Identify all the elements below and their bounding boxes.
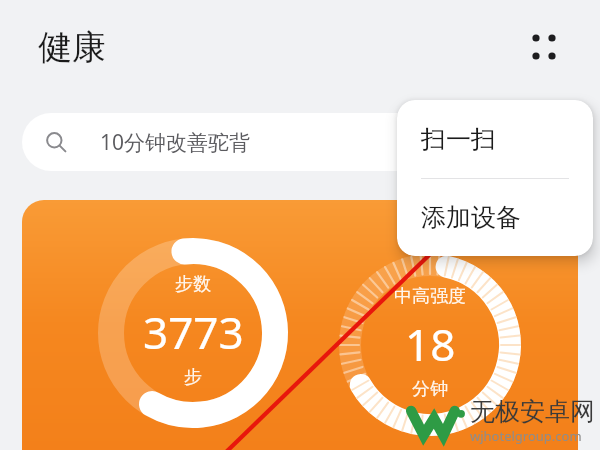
staticText: 无极安卓网 bbox=[470, 396, 595, 427]
staticText: 10分钟改善驼背 bbox=[100, 128, 251, 157]
staticText: 扫一扫 bbox=[421, 124, 496, 155]
staticText: 添加设备 bbox=[421, 202, 521, 233]
staticText: wjhotelgroup.com bbox=[470, 427, 582, 445]
button[interactable]: 添加设备 bbox=[397, 179, 593, 256]
button[interactable]: 10分钟改善驼背 bbox=[22, 113, 578, 171]
button[interactable]: 步数 bbox=[22, 200, 578, 450]
staticText: 步数 bbox=[175, 273, 211, 296]
button[interactable]: More options bbox=[518, 20, 574, 76]
staticText: 分钟 bbox=[412, 378, 448, 401]
button[interactable]: 扫一扫 bbox=[397, 100, 593, 178]
staticText: 3773 bbox=[143, 302, 244, 362]
staticText: 健康 bbox=[38, 26, 106, 69]
staticText: 中高强度 bbox=[394, 285, 466, 308]
staticText: 步 bbox=[184, 366, 202, 389]
staticText: 18 bbox=[405, 314, 456, 374]
